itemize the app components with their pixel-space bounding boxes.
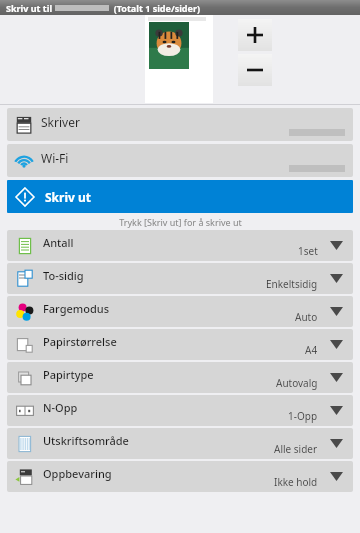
button[interactable]: Zoom in <box>238 19 272 51</box>
staticText: Enkeltsidig <box>266 277 318 291</box>
staticText: Skriv ut til <box>6 2 55 14</box>
other: Expand To-sidig <box>330 274 343 283</box>
button[interactable]: Skriver <box>7 108 353 141</box>
button[interactable]: Skriv ut <box>7 180 353 213</box>
other: Expand Antall <box>330 241 343 250</box>
staticText: Alle sider <box>274 442 318 456</box>
staticText: Wi-Fi <box>41 150 69 166</box>
staticText: Oppbevaring <box>43 466 112 481</box>
staticText: Antall <box>43 235 74 250</box>
other: Expand Fargemodus <box>330 307 343 316</box>
button[interactable]: Oppbevaring <box>7 461 353 492</box>
button[interactable]: Utskriftsområde <box>7 428 353 459</box>
other: Expand Oppbevaring <box>330 472 343 481</box>
staticText: Skriver <box>41 114 80 130</box>
other: Expand N-Opp <box>330 406 343 415</box>
staticText: To-sidig <box>43 268 84 283</box>
staticText: Fargemodus <box>43 301 109 316</box>
button[interactable]: Zoom out <box>238 54 272 86</box>
button[interactable]: Papirstørrelse <box>7 329 353 360</box>
staticText: Papirstørrelse <box>43 334 117 349</box>
staticText: 1-Opp <box>288 409 318 423</box>
staticText: (Totalt 1 side/sider) <box>109 2 200 14</box>
button[interactable]: Antall <box>7 230 353 261</box>
button[interactable]: Papirtype <box>7 362 353 393</box>
button[interactable]: N-Opp <box>7 395 353 426</box>
staticText: 1set <box>298 244 318 258</box>
staticText: N-Opp <box>43 400 78 415</box>
staticText: Papirtype <box>43 367 94 382</box>
staticText: Ikke hold <box>274 475 318 489</box>
staticText: A4 <box>305 343 318 357</box>
other: Expand Utskriftsområde <box>330 439 343 448</box>
staticText: Utskriftsområde <box>43 433 129 448</box>
other: Expand Papirtype <box>330 373 343 382</box>
button[interactable]: Fargemodus <box>7 296 353 327</box>
staticText: Auto <box>295 310 318 324</box>
button[interactable]: To-sidig <box>7 263 353 294</box>
staticText: Trykk [Skriv ut] for å skrive ut <box>119 216 242 228</box>
staticText: Autovalg <box>276 376 318 390</box>
other: Expand Papirstørrelse <box>330 340 343 349</box>
staticText: Skriv ut <box>45 189 91 205</box>
button[interactable]: Wi-Fi <box>7 144 353 177</box>
